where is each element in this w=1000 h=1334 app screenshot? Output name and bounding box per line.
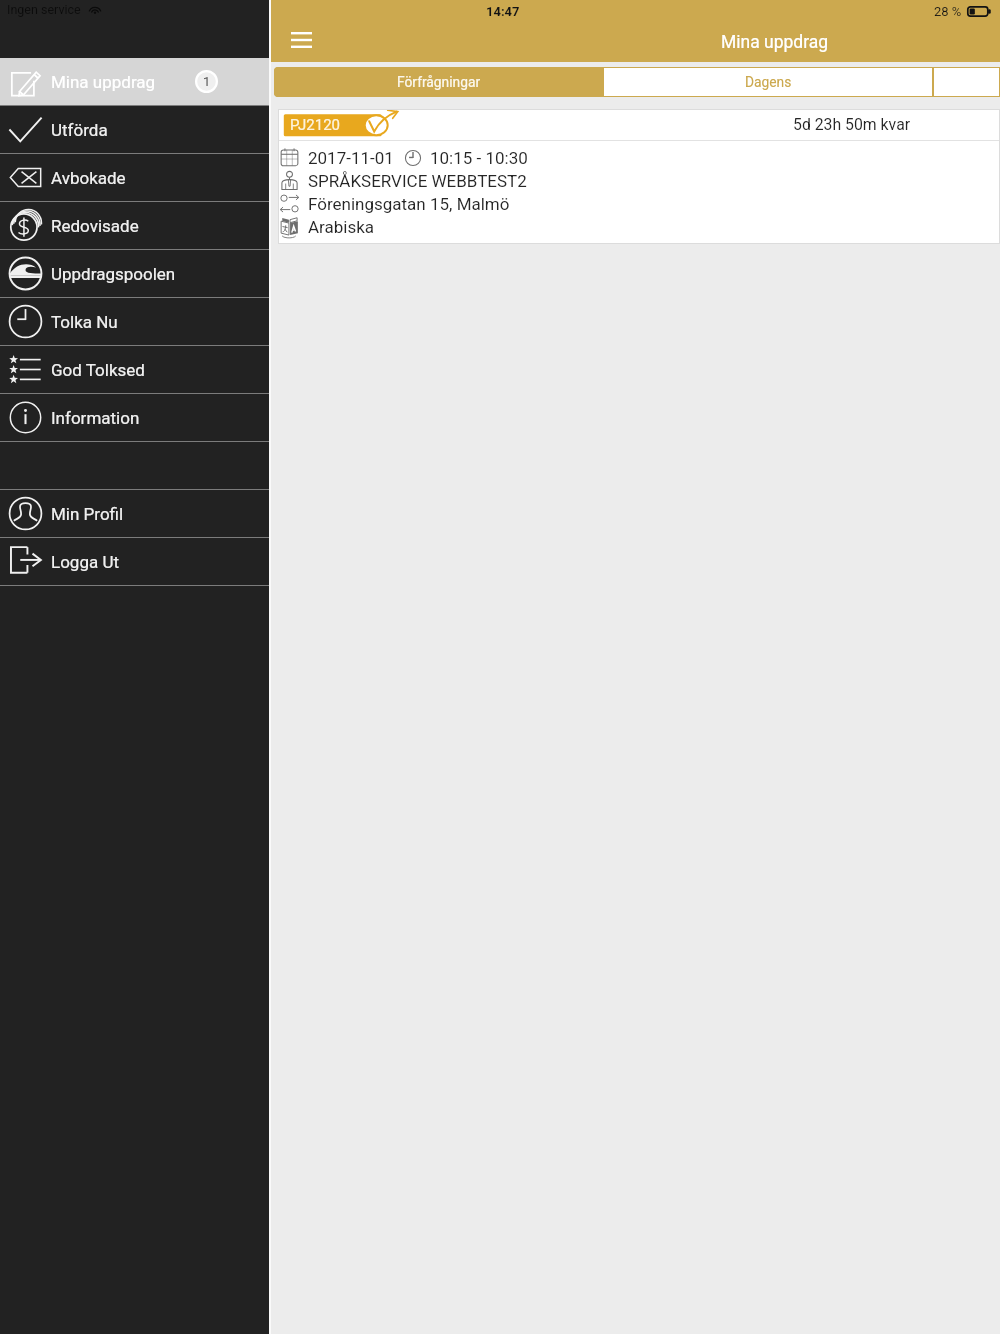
staticText: Föreningsgatan 15, Malmö — [308, 194, 510, 214]
staticText: Min Profil — [51, 504, 124, 524]
button[interactable]: Utförda — [0, 106, 269, 153]
staticText: Mina uppdrag — [721, 32, 829, 53]
staticText: 1 — [203, 74, 211, 89]
staticText: God Tolksed — [51, 360, 145, 380]
button[interactable]: Mina uppdrag — [0, 58, 269, 105]
staticText: SPRÅKSERVICE WEBBTEST2 — [308, 171, 527, 191]
staticText: 14:47 — [486, 4, 520, 19]
staticText: Förfrågningar — [397, 74, 481, 90]
button[interactable]: Information — [0, 394, 269, 441]
staticText: Utförda — [51, 120, 108, 140]
staticText: 10:15 - 10:30 — [430, 148, 528, 168]
staticText: 2017-11-01 — [308, 148, 394, 168]
staticText: Uppdragspoolen — [51, 264, 176, 284]
button[interactable]: Min Profil — [0, 490, 269, 537]
staticText: Mina uppdrag — [51, 72, 156, 92]
button[interactable]: Avbokade — [0, 154, 269, 201]
button[interactable]: God Tolksed — [0, 346, 269, 393]
button[interactable]: Uppdragspoolen — [0, 250, 269, 297]
button[interactable]: Redovisade — [0, 202, 269, 249]
staticText: PJ2120 — [290, 116, 340, 134]
staticText: Dagens — [745, 74, 792, 90]
button[interactable]: Tolka Nu — [0, 298, 269, 345]
staticText: Ingen service — [7, 2, 81, 17]
staticText: 5d 23h 50m kvar — [793, 115, 911, 134]
staticText: Redovisade — [51, 216, 139, 236]
button[interactable]: Open navigation menu — [281, 23, 321, 57]
staticText: Tolka Nu — [51, 312, 118, 332]
staticText: Information — [51, 408, 140, 428]
button[interactable]: Dagens — [603, 67, 933, 97]
staticText: Logga Ut — [51, 552, 119, 572]
button[interactable]: Logga Ut — [0, 538, 269, 585]
button[interactable]: Förfrågningar — [274, 67, 603, 97]
staticText: Avbokade — [51, 168, 126, 188]
staticText: 28 % — [934, 4, 962, 19]
staticText: Arabiska — [308, 217, 375, 237]
button[interactable] — [933, 67, 1000, 97]
button[interactable]: PJ2120 — [278, 109, 1000, 244]
